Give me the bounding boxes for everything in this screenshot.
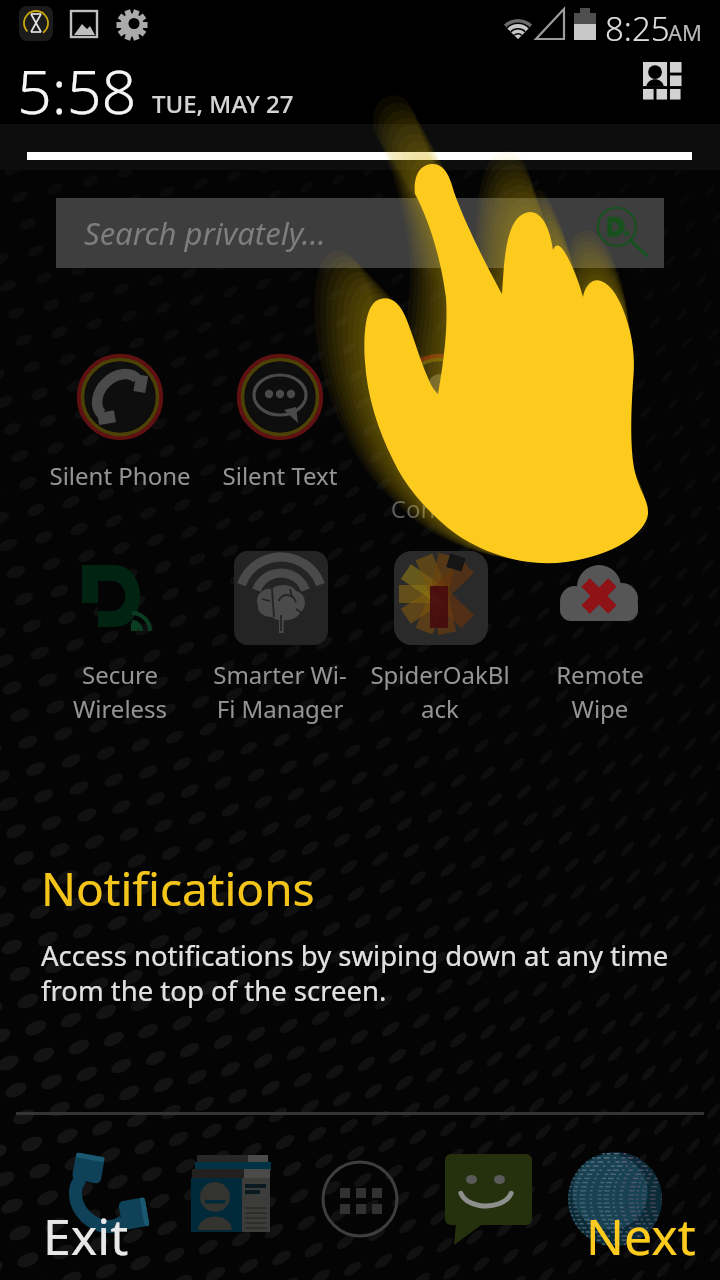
- staticText: Exit: [43, 1202, 129, 1270]
- staticText: TUE, MAY 27: [152, 87, 294, 120]
- button[interactable]: Phone: [52, 1146, 156, 1250]
- staticText: Remote Wipe: [480, 658, 720, 725]
- button[interactable]: Silent Contacts: [397, 354, 483, 440]
- button[interactable]: Silent Phone: [77, 354, 163, 440]
- button[interactable]: Remote Wipe: [554, 551, 648, 645]
- button[interactable]: Secure Wireless: [76, 551, 168, 643]
- staticText: Search privately...: [84, 212, 326, 254]
- button[interactable]: Apps: [314, 1153, 406, 1245]
- button[interactable]: Next: [579, 1202, 703, 1270]
- staticText: Access notifications by swiping down at …: [41, 937, 669, 1009]
- staticText: 5:58: [17, 49, 137, 132]
- staticText: AM: [668, 17, 703, 47]
- staticText: Smarter Wi- Fi Manager: [160, 658, 400, 725]
- staticText: Silent Text: [160, 459, 400, 492]
- staticText: 8:25: [605, 6, 670, 51]
- button[interactable]: Contacts widget: [643, 62, 695, 114]
- staticText: SpiderOakBl ack: [320, 658, 560, 725]
- button[interactable]: Contacts: [186, 1152, 278, 1244]
- staticText: Next: [586, 1202, 696, 1270]
- staticText: Silent Phone: [0, 459, 240, 492]
- staticText: Secure Wireless: [0, 658, 240, 725]
- button[interactable]: Search privately...: [56, 198, 664, 268]
- button[interactable]: Exit: [36, 1202, 136, 1270]
- button[interactable]: Browser: [567, 1151, 665, 1249]
- button[interactable]: Silent Text: [237, 354, 323, 440]
- button[interactable]: SpiderOakBlack: [394, 551, 488, 645]
- staticText: Silent Contacts: [320, 459, 560, 525]
- button[interactable]: Messaging: [440, 1150, 540, 1250]
- button[interactable]: Smarter Wi-Fi Manager: [234, 551, 328, 645]
- staticText: Notifications: [41, 857, 315, 920]
